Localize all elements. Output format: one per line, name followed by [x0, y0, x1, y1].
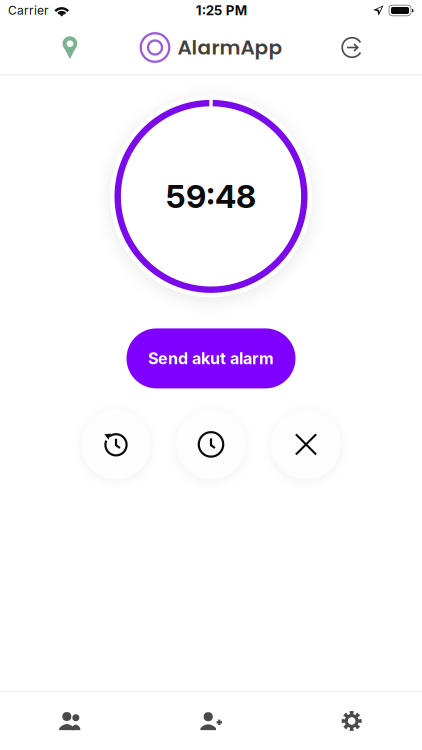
staticText: Carrier [8, 3, 49, 18]
button[interactable]: Restart timer [81, 409, 151, 479]
button[interactable]: Set time [176, 409, 246, 479]
staticText: 59:48 [166, 177, 256, 216]
staticText: AlarmApp [177, 33, 282, 61]
button[interactable]: Cancel [271, 409, 341, 479]
staticText: 1:25 PM [196, 2, 247, 18]
button[interactable]: Add contact [141, 692, 281, 750]
button[interactable]: Location [48, 21, 92, 74]
button[interactable]: Send akut alarm [126, 328, 295, 388]
button[interactable]: Contacts [0, 692, 141, 750]
button[interactable]: Sign out [330, 21, 374, 74]
button[interactable]: Settings [281, 692, 422, 750]
staticText: Send akut alarm [148, 349, 274, 368]
